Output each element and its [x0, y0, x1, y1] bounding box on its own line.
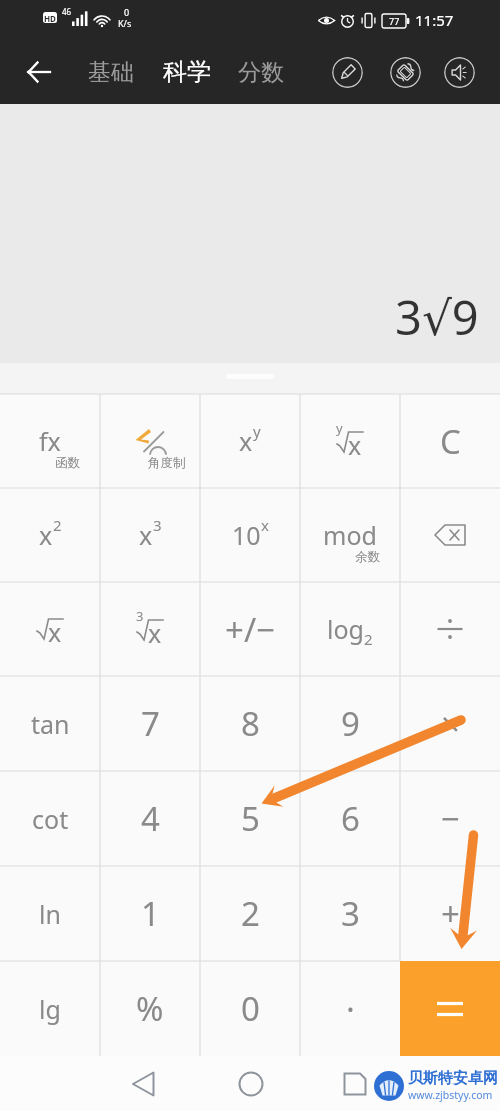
staticText: x	[139, 518, 153, 552]
staticText: x	[261, 515, 269, 535]
button[interactable]: Divide	[400, 582, 500, 676]
staticText: lg	[39, 992, 61, 1026]
button[interactable]: −	[400, 771, 500, 866]
button[interactable]: C	[400, 394, 500, 488]
button[interactable]: lg	[0, 961, 100, 1056]
staticText: ·	[346, 986, 355, 1031]
button[interactable]: 2	[200, 866, 300, 961]
button[interactable]: Back	[107, 1056, 179, 1111]
button[interactable]: cot	[0, 771, 100, 866]
staticText: mod	[323, 518, 377, 552]
staticText: y	[336, 419, 343, 437]
staticText: 77	[389, 15, 400, 27]
button[interactable]: 科学	[153, 49, 221, 95]
staticText: x	[348, 428, 362, 462]
button[interactable]: +/−	[200, 582, 300, 676]
button[interactable]: %	[100, 961, 200, 1056]
button[interactable]: tan	[0, 676, 100, 771]
button[interactable]: mod	[300, 488, 400, 582]
button[interactable]: 基础	[78, 50, 144, 95]
staticText: 2	[53, 515, 62, 535]
staticText: 11:57	[415, 10, 454, 30]
button[interactable]: 8	[200, 676, 300, 771]
staticText: 角度制	[148, 455, 186, 471]
staticText: tan	[31, 707, 70, 741]
staticText: cot	[32, 802, 69, 836]
staticText: 9	[341, 701, 360, 746]
button[interactable]: ×	[400, 676, 500, 771]
staticText: 基础	[88, 58, 134, 87]
button[interactable]: 10	[200, 488, 300, 582]
button[interactable]: 1	[100, 866, 200, 961]
button[interactable]: Square root	[300, 394, 400, 488]
staticText: 3	[153, 515, 162, 535]
staticText: 1	[141, 891, 160, 936]
button[interactable]: log	[300, 582, 400, 676]
staticText: www.zjbstyy.com	[408, 1088, 493, 1102]
staticText: K/s	[118, 17, 132, 29]
staticText: 0	[241, 986, 260, 1031]
staticText: +	[441, 891, 460, 936]
staticText: 46	[62, 6, 72, 17]
staticText: 函数	[55, 455, 80, 471]
staticText: x	[48, 615, 62, 649]
staticText: 分数	[238, 58, 284, 87]
button[interactable]: ·	[300, 961, 400, 1056]
button[interactable]: 9	[300, 676, 400, 771]
button[interactable]: Equals	[400, 961, 500, 1056]
button[interactable]: ln	[0, 866, 100, 961]
staticText: y	[253, 421, 261, 441]
staticText: 4	[141, 796, 160, 841]
staticText: 2	[364, 629, 373, 649]
staticText: 3	[341, 891, 360, 936]
staticText: −	[441, 796, 460, 841]
staticText: 3√9	[395, 285, 479, 349]
staticText: HD	[44, 13, 56, 24]
button[interactable]: 3	[300, 866, 400, 961]
button[interactable]: fx	[0, 394, 100, 488]
button[interactable]: 5	[200, 771, 300, 866]
staticText: 5	[241, 796, 260, 841]
button[interactable]: Sound	[444, 57, 475, 88]
staticText: ×	[441, 701, 460, 746]
staticText: 0	[124, 6, 130, 18]
button[interactable]: Vibration	[390, 57, 421, 88]
button[interactable]: x	[100, 488, 200, 582]
staticText: +/−	[225, 607, 276, 652]
button[interactable]: Backspace	[400, 488, 500, 582]
staticText: 7	[141, 701, 160, 746]
button[interactable]: 6	[300, 771, 400, 866]
button[interactable]: 分数	[228, 50, 294, 95]
staticText: 2	[241, 891, 260, 936]
button[interactable]: Square root	[100, 582, 200, 676]
staticText: x	[239, 424, 253, 458]
button[interactable]: 7	[100, 676, 200, 771]
button[interactable]: x	[0, 488, 100, 582]
staticText: 余数	[355, 549, 380, 565]
button[interactable]: Angle unit	[100, 394, 200, 488]
staticText: 8	[241, 701, 260, 746]
button[interactable]: Back	[15, 48, 63, 96]
staticText: fx	[39, 424, 61, 458]
staticText: C	[440, 419, 461, 464]
button[interactable]: Home	[215, 1056, 287, 1111]
staticText: log	[327, 612, 364, 646]
staticText: 贝斯特安卓网	[408, 1069, 498, 1088]
button[interactable]: +	[400, 866, 500, 961]
staticText: 6	[341, 796, 360, 841]
button[interactable]: 4	[100, 771, 200, 866]
button[interactable]: Square root	[0, 582, 100, 676]
staticText: ln	[39, 897, 61, 931]
staticText: x	[148, 616, 162, 650]
button[interactable]: Handwriting	[332, 57, 363, 88]
button[interactable]: x	[200, 394, 300, 488]
staticText: 3	[136, 607, 144, 625]
button[interactable]: 0	[200, 961, 300, 1056]
staticText: 10	[232, 518, 261, 552]
staticText: 科学	[163, 57, 211, 87]
staticText: %	[136, 986, 164, 1031]
staticText: x	[39, 518, 53, 552]
button[interactable]: Recent apps	[319, 1056, 391, 1111]
